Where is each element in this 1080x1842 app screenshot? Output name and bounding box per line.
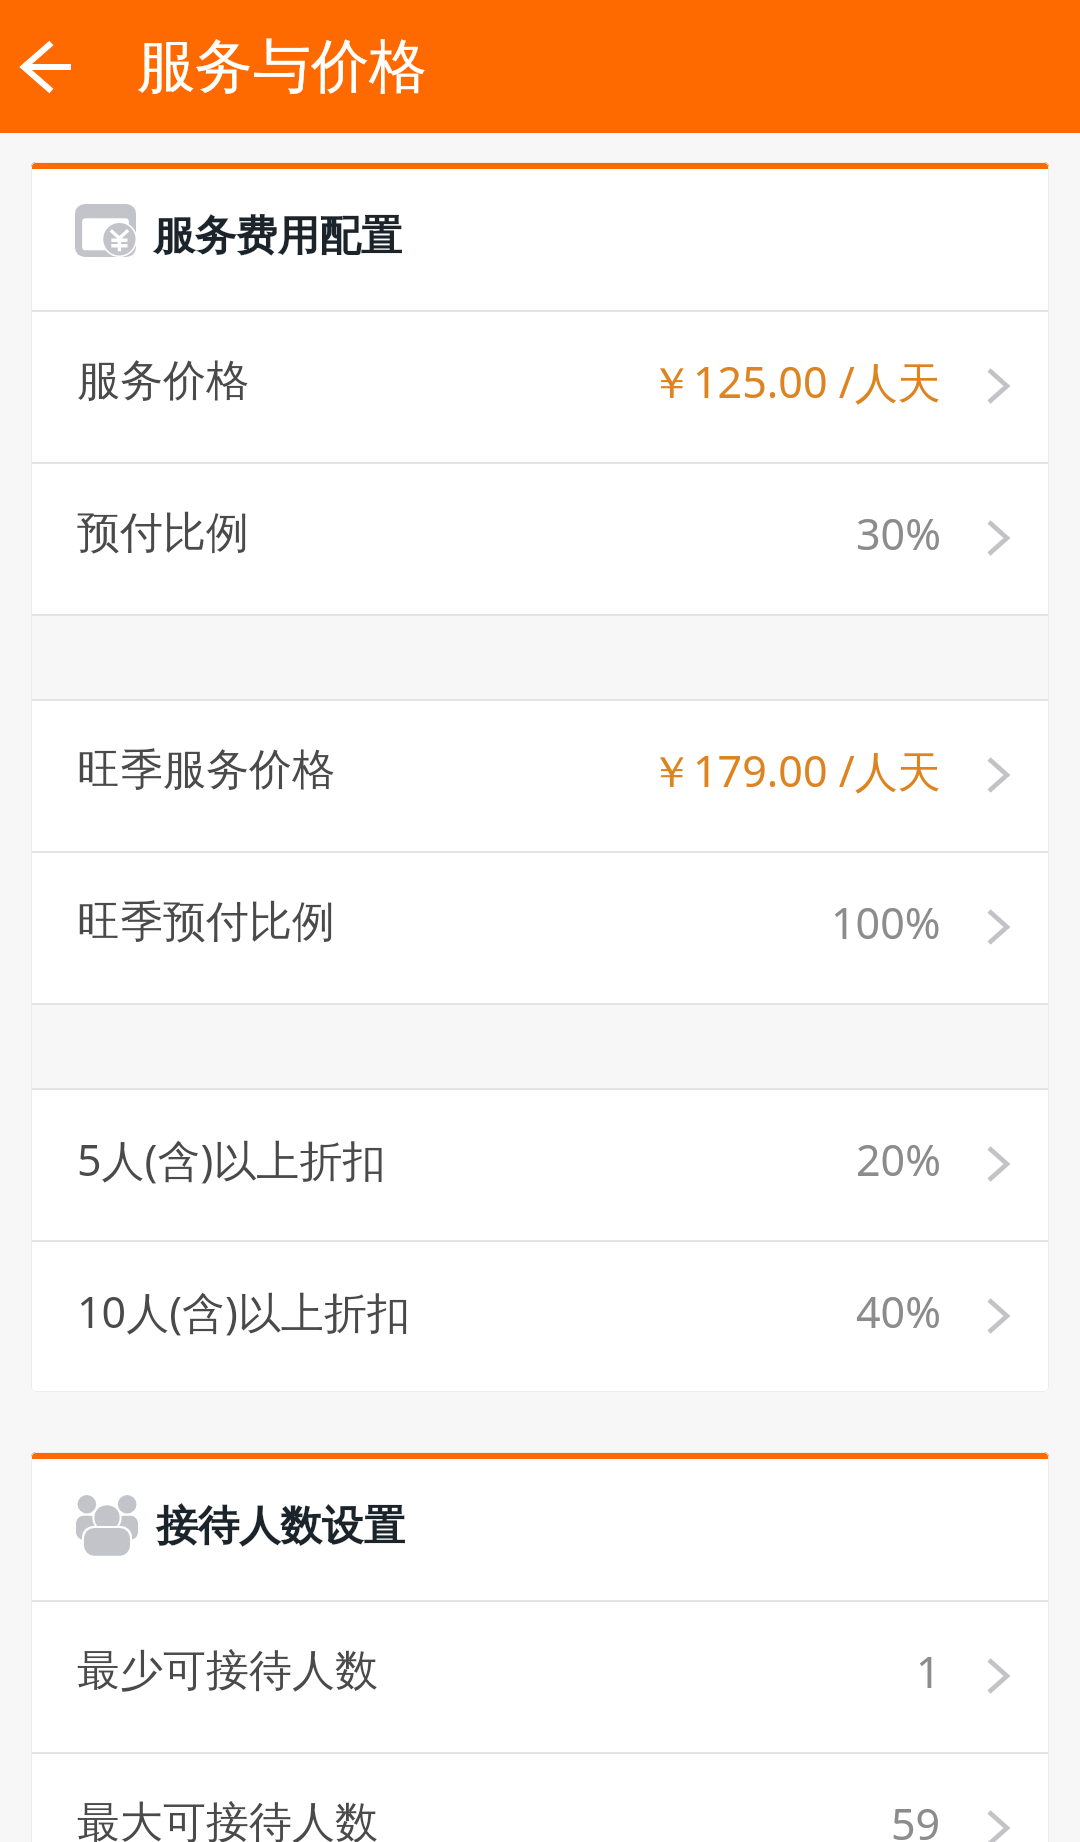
staticText: 30% bbox=[856, 504, 941, 563]
staticText: 20% bbox=[856, 1130, 941, 1189]
staticText: 1 bbox=[916, 1642, 941, 1701]
staticText: 40% bbox=[856, 1282, 941, 1341]
button[interactable]: 预付比例 bbox=[31, 464, 1049, 614]
button[interactable]: 5人(含)以上折扣 bbox=[31, 1090, 1049, 1240]
staticText: 接待人数设置 bbox=[156, 1500, 405, 1552]
button[interactable]: 最大可接待人数 bbox=[31, 1754, 1049, 1842]
staticText: 服务与价格 bbox=[137, 30, 427, 103]
staticText: 10人(含)以上折扣 bbox=[77, 1282, 410, 1341]
staticText: 最少可接待人数 bbox=[77, 1644, 378, 1698]
button[interactable]: 10人(含)以上折扣 bbox=[31, 1242, 1049, 1392]
button[interactable]: 最少可接待人数 bbox=[31, 1602, 1049, 1752]
button[interactable]: 旺季服务价格 bbox=[31, 701, 1049, 851]
staticText: ￥125.00 /人天 bbox=[650, 352, 941, 411]
staticText: 100% bbox=[831, 893, 941, 952]
staticText: 服务费用配置 bbox=[153, 210, 402, 262]
staticText: 59 bbox=[891, 1794, 941, 1842]
staticText: 预付比例 bbox=[77, 506, 249, 560]
staticText: 最大可接待人数 bbox=[77, 1796, 378, 1842]
staticText: 旺季预付比例 bbox=[77, 895, 335, 949]
button[interactable]: 服务价格 bbox=[31, 312, 1049, 462]
staticText: 5人(含)以上折扣 bbox=[77, 1130, 386, 1189]
button[interactable]: 旺季预付比例 bbox=[31, 853, 1049, 1003]
button[interactable]: Back bbox=[0, 0, 112, 133]
staticText: ￥179.00 /人天 bbox=[650, 741, 941, 800]
staticText: 服务价格 bbox=[77, 354, 249, 408]
staticText: 旺季服务价格 bbox=[77, 743, 335, 797]
